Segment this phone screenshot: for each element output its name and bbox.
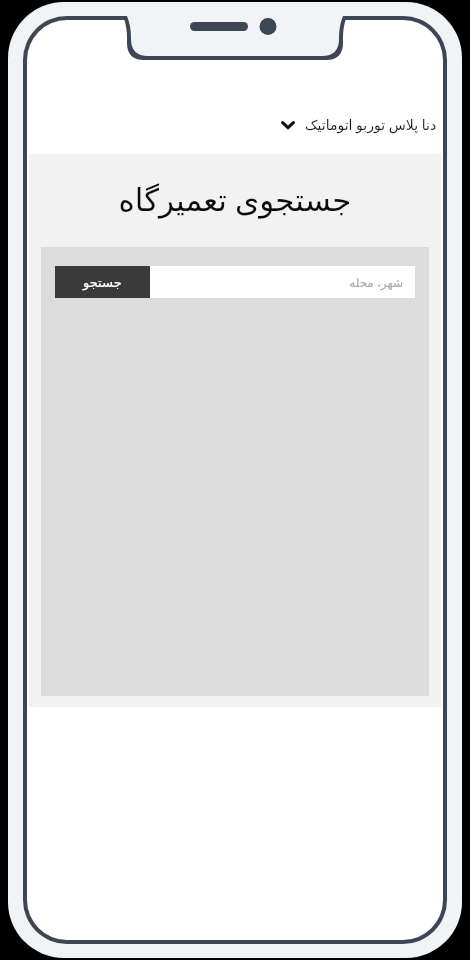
other: Expand vehicle selector [279, 116, 297, 134]
staticText: جستجوی تعمیرگاه [29, 178, 441, 220]
button[interactable]: شهر، محله [150, 266, 415, 298]
staticText: جستجو [83, 275, 122, 290]
button[interactable]: Expand vehicle selector [275, 109, 441, 140]
button[interactable]: جستجو [55, 266, 150, 298]
staticText: شهر، محله [349, 274, 403, 290]
staticText: دنا پلاس توربو اتوماتیک [305, 115, 437, 134]
